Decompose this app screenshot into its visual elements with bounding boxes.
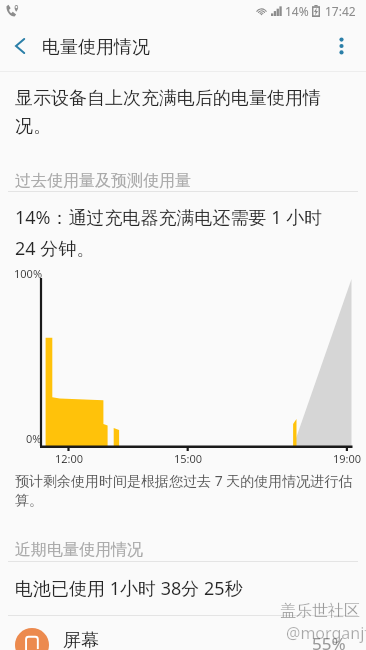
staticText: 近期电量使用情况 [15, 540, 143, 560]
staticText: 12:00 [55, 451, 84, 466]
button[interactable]: Back [3, 29, 37, 63]
staticText: 55% [312, 632, 346, 650]
staticText: 预计剩余使用时间是根据您过去 7 天的使用情况进行估算。 [15, 471, 354, 509]
button[interactable]: 屏幕 [0, 616, 366, 650]
staticText: 显示设备自上次充满电后的电量使用情况。 [15, 87, 352, 137]
staticText: 15:00 [174, 451, 203, 466]
staticText: 14%：通过充电器充满电还需要 1 小时 24 分钟。 [15, 205, 346, 260]
staticText: 19:00 [333, 451, 362, 466]
staticText: 17:42 [325, 3, 356, 19]
staticText: 100% [14, 266, 43, 281]
staticText: 盖乐世社区 [280, 601, 360, 621]
staticText: 过去使用量及预测使用量 [15, 171, 191, 191]
staticText: 电池已使用 1小时 38分 25秒 [15, 576, 243, 601]
staticText: 14% [285, 3, 309, 19]
staticText: @morganjf [286, 622, 366, 644]
staticText: 屏幕 [63, 629, 99, 650]
staticText: 电量使用情况 [42, 36, 150, 59]
staticText: 0% [26, 431, 42, 446]
button[interactable]: More options [324, 29, 358, 63]
